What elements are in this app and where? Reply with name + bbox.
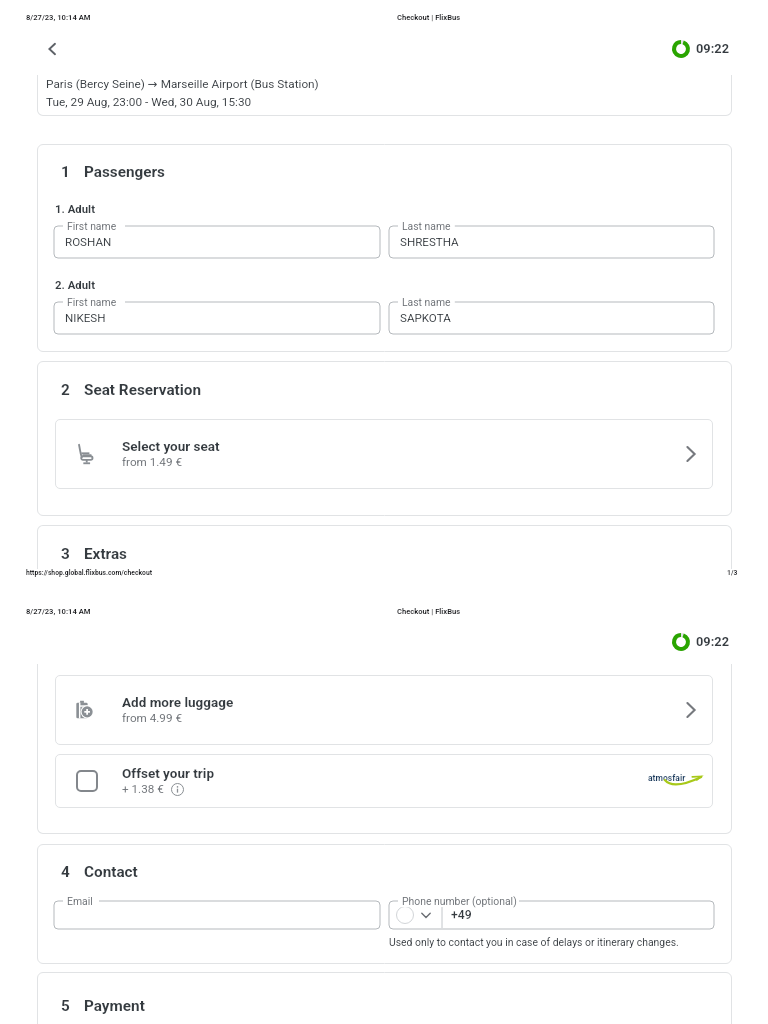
button[interactable]: SHRESTHA [389,226,714,258]
staticText: Seat Reservation [84,381,202,399]
staticText: 8/27/23, 10:14 AM [26,13,91,22]
staticText: Extras [84,545,127,563]
staticText: 2 [61,381,70,399]
button[interactable]: Select your seat [55,419,713,489]
staticText: First name [67,220,117,232]
staticText: Tue, 29 Aug, 23:00 - Wed, 30 Aug, 15:30 [46,95,252,109]
staticText: SAPKOTA [400,311,451,325]
staticText: 8/27/23, 10:14 AM [26,607,91,616]
staticText: Checkout | FlixBus [397,13,461,22]
staticText: 5 [61,997,70,1015]
staticText: 1 [61,163,70,181]
button[interactable]: SAPKOTA [389,302,714,334]
staticText: Offset your trip [122,765,214,781]
staticText: 4 [61,863,70,881]
button[interactable]: +49 [389,901,714,929]
button[interactable]: ROSHAN [54,226,380,258]
staticText: from 1.49 € [122,455,182,469]
button[interactable]: Offset your trip [55,754,713,808]
button[interactable]: Back [41,39,61,59]
staticText: Contact [84,863,138,881]
button[interactable]: NIKESH [54,302,380,334]
staticText: Used only to contact you in case of dela… [389,936,679,948]
staticText: Phone number (optional) [402,895,517,907]
staticText: +49 [451,908,472,922]
staticText: NIKESH [65,311,106,325]
staticText: + 1.38 € [122,782,164,796]
staticText: Last name [402,296,451,308]
staticText: SHRESTHA [400,235,459,249]
staticText: Payment [84,997,145,1015]
staticText: 09:22 [696,634,729,649]
staticText: Passengers [84,163,165,181]
staticText: 3 [61,545,70,563]
staticText: Checkout | FlixBus [397,607,461,616]
staticText: Paris (Bercy Seine) → Marseille Airport … [46,77,319,91]
button[interactable] [54,901,380,929]
staticText: 2. Adult [55,278,95,291]
staticText: from 4.99 € [122,711,182,725]
staticText: https://shop.global.flixbus.com/checkout [26,569,152,577]
button[interactable]: Add more luggage [55,675,713,745]
staticText: 09:22 [696,41,729,56]
staticText: 1. Adult [55,202,95,215]
staticText: 1/3 [727,569,738,577]
staticText: ROSHAN [65,235,112,249]
staticText: Email [67,895,93,907]
staticText: Add more luggage [122,694,234,710]
staticText: Select your seat [122,438,220,454]
staticText: First name [67,296,117,308]
staticText: Last name [402,220,451,232]
staticText: atmosfair [648,773,686,783]
